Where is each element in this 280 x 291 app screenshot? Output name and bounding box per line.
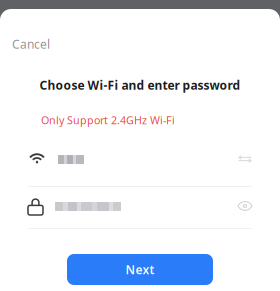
button[interactable]: Wi-Fi network — [0, 145, 200, 187]
button[interactable]: Next — [67, 254, 213, 285]
staticText: Only Support 2.4GHz Wi-Fi — [41, 113, 175, 127]
staticText: Choose Wi-Fi and enter password — [39, 77, 240, 93]
button[interactable]: Cancel — [12, 31, 68, 57]
button[interactable]: Switch network — [227, 141, 263, 177]
button[interactable]: Show password — [227, 188, 263, 224]
staticText: Cancel — [12, 36, 50, 52]
button[interactable]: Password — [0, 189, 200, 229]
staticText: Next — [125, 261, 154, 277]
